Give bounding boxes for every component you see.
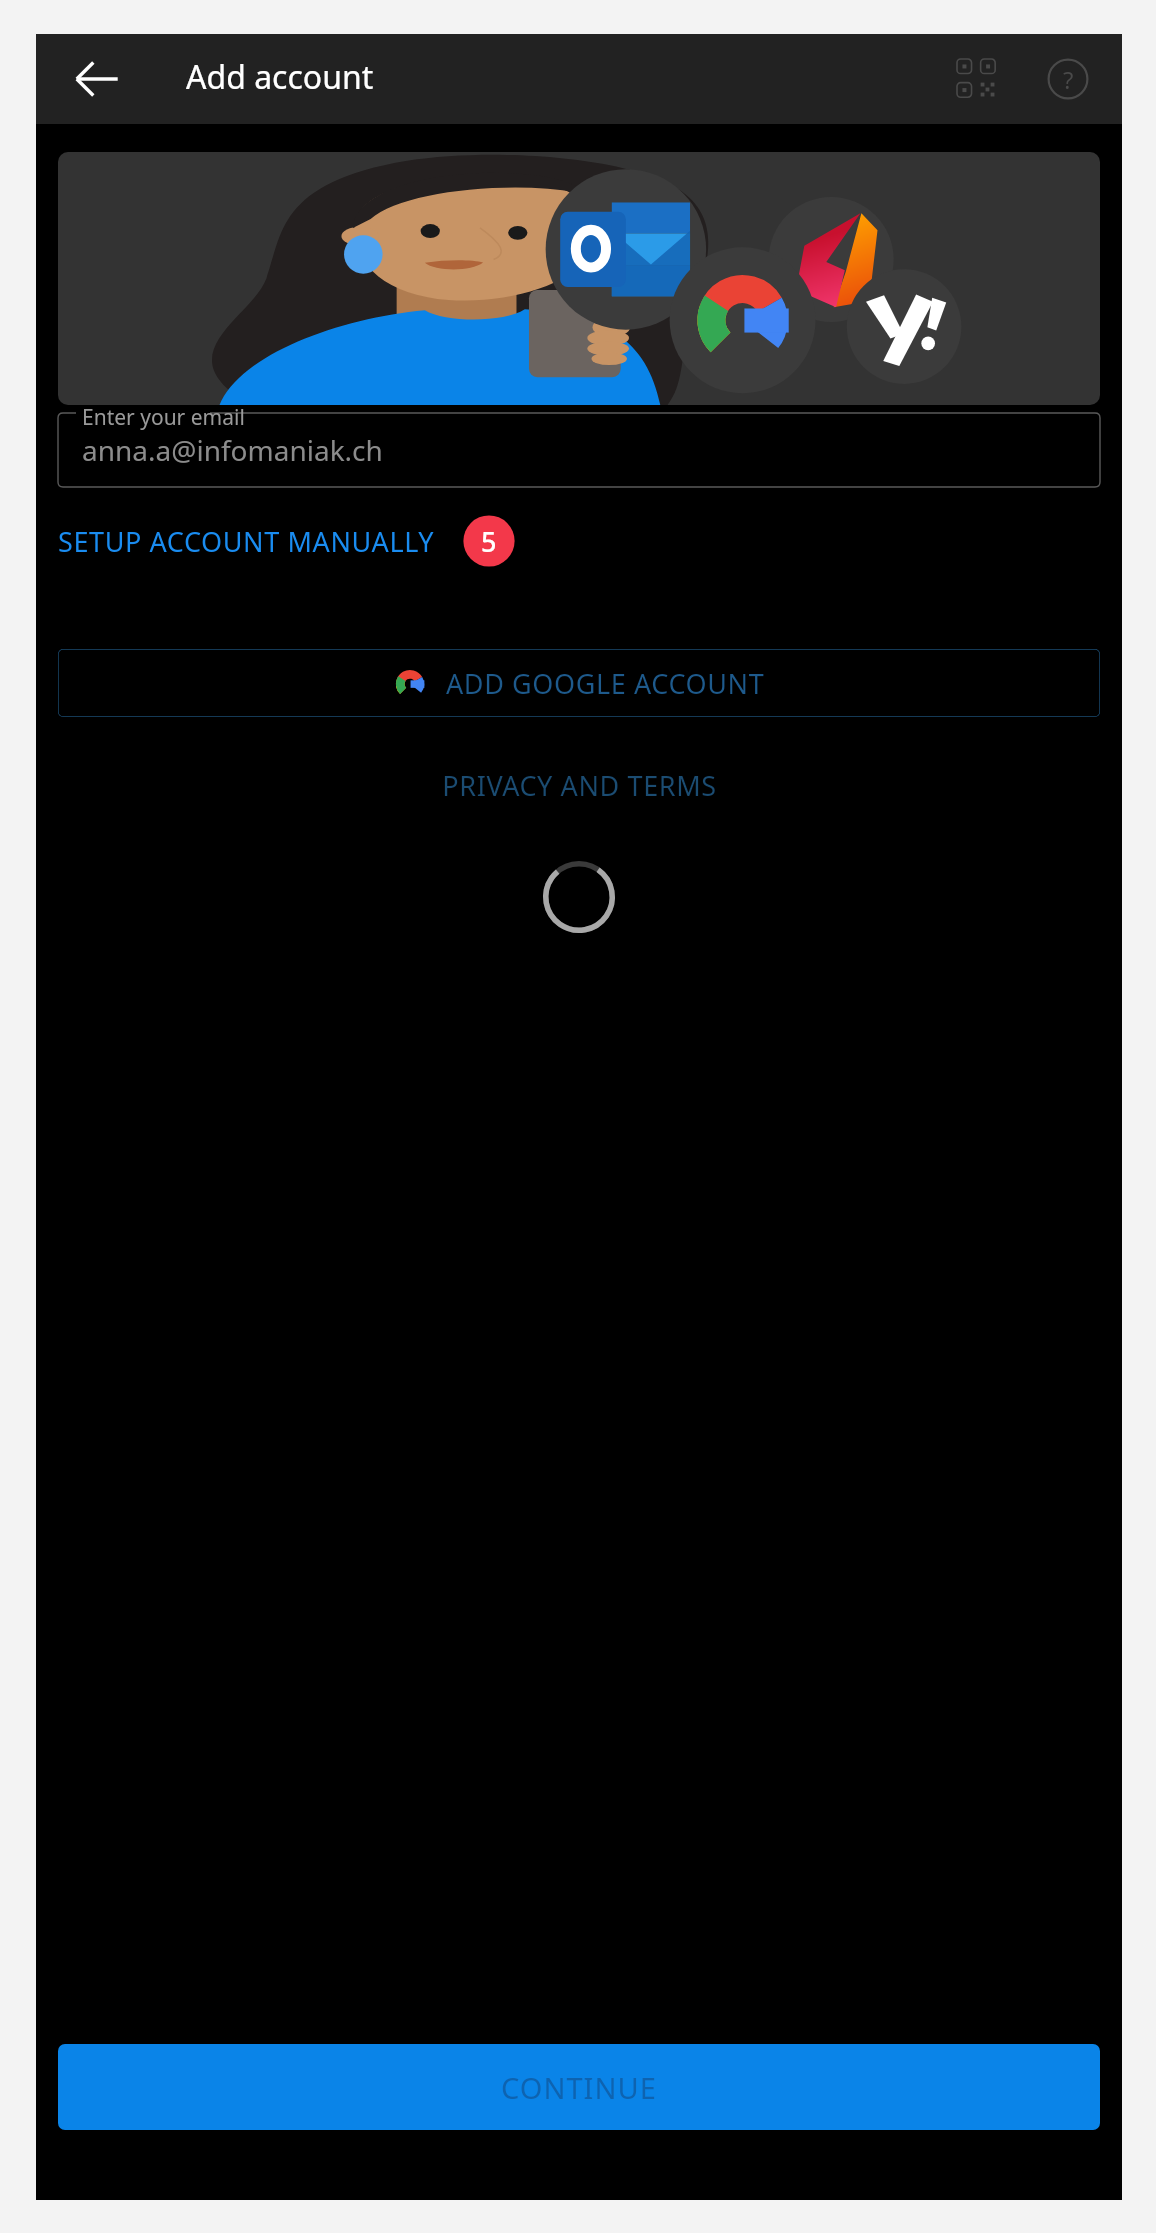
staticText: Enter your email — [82, 403, 245, 432]
staticText: Add account — [186, 55, 374, 99]
staticText: anna.a@infomaniak.ch — [82, 431, 383, 469]
button[interactable]: Scan QR code — [937, 39, 1017, 119]
staticText: ADD GOOGLE ACCOUNT — [446, 665, 765, 702]
button[interactable]: SETUP ACCOUNT MANUALLY — [58, 505, 521, 577]
staticText: 5 — [481, 523, 497, 560]
button[interactable]: Back — [54, 36, 140, 122]
button[interactable]: ADD GOOGLE ACCOUNT — [58, 649, 1100, 717]
staticText: SETUP ACCOUNT MANUALLY — [58, 523, 435, 560]
button[interactable]: PRIVACY AND TERMS — [442, 767, 717, 804]
staticText: CONTINUE — [501, 2068, 657, 2107]
button[interactable]: CONTINUE — [58, 2044, 1100, 2130]
button[interactable]: Help — [1028, 39, 1108, 119]
staticText: ? — [1063, 63, 1074, 96]
button[interactable]: Enter your email — [58, 405, 1100, 487]
